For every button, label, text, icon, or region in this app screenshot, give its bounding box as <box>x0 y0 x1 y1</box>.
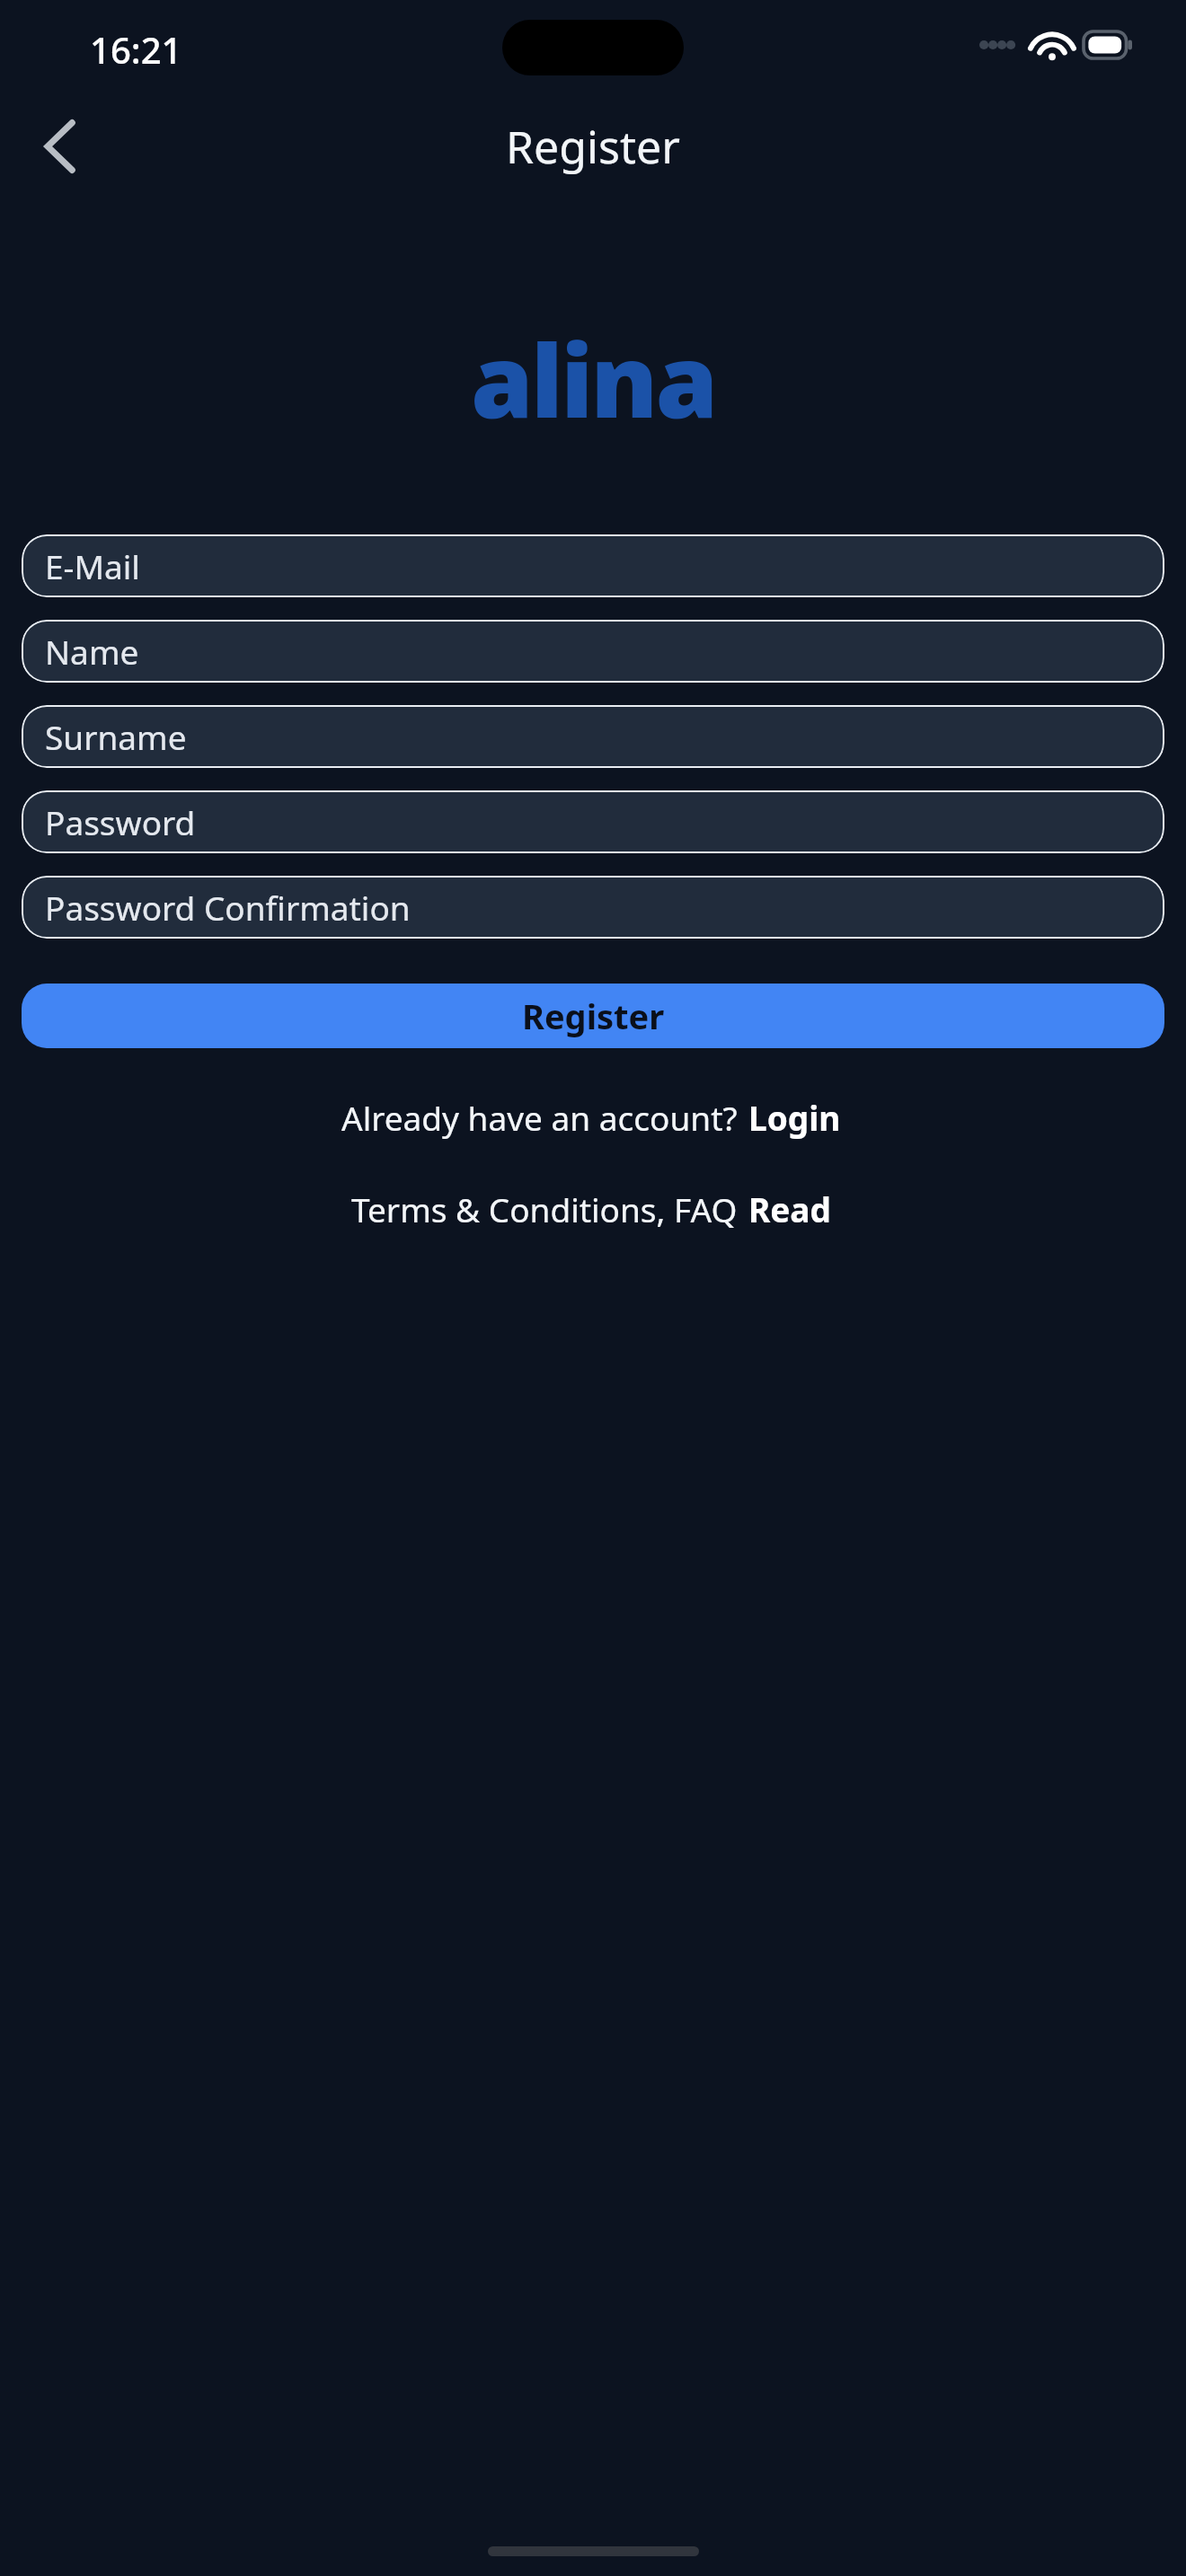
staticText: Register <box>522 992 665 1039</box>
staticText: Name <box>45 629 139 674</box>
button[interactable]: Read <box>738 1187 835 1231</box>
button[interactable]: Surname <box>22 705 1164 768</box>
button[interactable]: Login <box>738 1095 845 1140</box>
button[interactable]: Password <box>22 790 1164 853</box>
staticText: Login <box>748 1095 841 1140</box>
staticText: E-Mail <box>45 543 140 588</box>
staticText: Surname <box>45 714 187 759</box>
button[interactable]: Register <box>22 984 1164 1048</box>
staticText: 16:21 <box>90 25 182 74</box>
button[interactable]: E-Mail <box>22 534 1164 597</box>
staticText: alina <box>471 310 716 445</box>
button[interactable]: Password Confirmation <box>22 876 1164 939</box>
staticText: Read <box>748 1187 831 1231</box>
staticText: Register <box>506 116 680 177</box>
button[interactable]: Name <box>22 620 1164 683</box>
staticText: Password <box>45 799 196 844</box>
staticText: Terms & Conditions, FAQ <box>351 1187 738 1231</box>
staticText: Already have an account? <box>341 1095 738 1140</box>
staticText: Password Confirmation <box>45 885 411 930</box>
button[interactable]: Back <box>18 103 104 190</box>
